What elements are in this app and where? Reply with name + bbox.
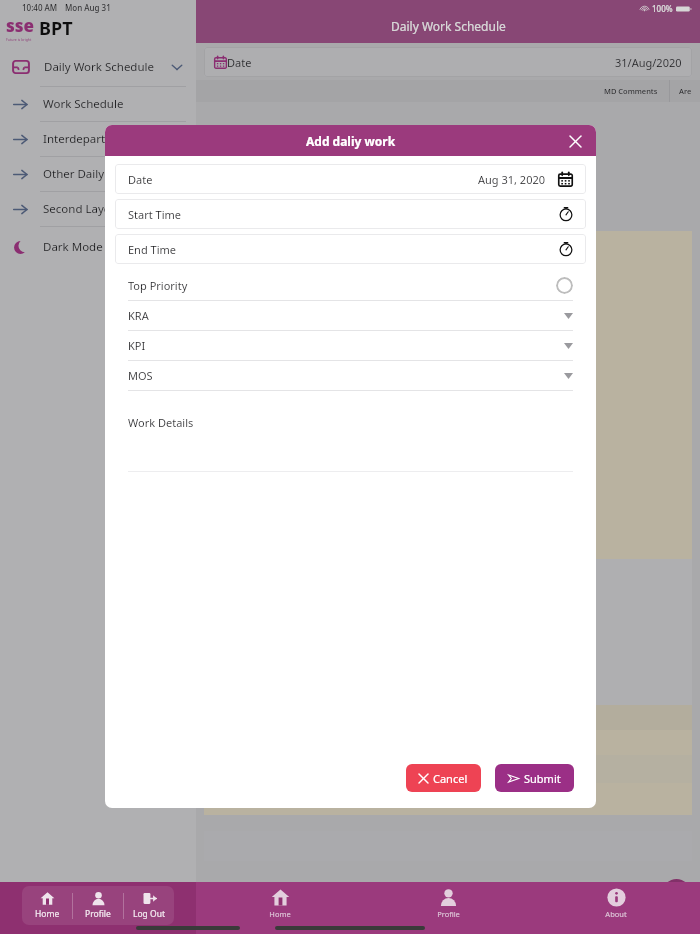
- staticText: Interdepartmental: [43, 131, 144, 147]
- button[interactable]: Log Out: [124, 886, 174, 925]
- staticText: Top Priority: [128, 278, 188, 293]
- button[interactable]: Cancel: [406, 764, 481, 792]
- staticText: End Time: [128, 242, 176, 257]
- button[interactable]: Second Layer: [0, 192, 196, 226]
- staticText: BPT: [39, 16, 73, 41]
- button[interactable]: Add: [663, 879, 690, 906]
- staticText: Are: [679, 86, 692, 96]
- staticText: About: [605, 909, 627, 919]
- staticText: KPI: [128, 338, 146, 353]
- staticText: Other Daily Work: [43, 166, 136, 182]
- button[interactable]: Dark Mode: [0, 227, 196, 267]
- staticText: KRA: [128, 308, 149, 323]
- staticText: Work Schedule: [43, 96, 124, 112]
- button[interactable]: Home: [22, 886, 72, 925]
- staticText: sse: [6, 14, 35, 37]
- button[interactable]: Top Priority: [128, 271, 573, 300]
- staticText: Daily Work Schedule: [391, 18, 506, 34]
- button[interactable]: Date: [204, 47, 692, 77]
- staticText: Second Layer: [43, 201, 116, 217]
- staticText: Future is bright: [6, 37, 32, 42]
- button[interactable]: Daily Work Schedule: [0, 48, 196, 86]
- button[interactable]: Start Time: [115, 199, 586, 229]
- button[interactable]: MOS: [128, 361, 573, 390]
- staticText: Submit: [524, 771, 561, 786]
- staticText: 10:40 AM: [22, 2, 58, 13]
- staticText: MD Comments: [604, 86, 658, 96]
- staticText: Home: [35, 908, 60, 920]
- button[interactable]: Other Daily Work: [0, 157, 196, 191]
- button[interactable]: KRA: [128, 301, 573, 330]
- staticText: Profile: [437, 909, 460, 919]
- staticText: Date: [227, 55, 252, 70]
- button[interactable]: Submit: [495, 764, 574, 792]
- staticText: 100%: [652, 3, 673, 14]
- button[interactable]: Profile: [364, 882, 532, 924]
- staticText: Start Time: [128, 207, 181, 222]
- staticText: Mon Aug 31: [65, 2, 111, 13]
- button[interactable]: Top priority toggle: [556, 277, 573, 294]
- button[interactable]: KPI: [128, 331, 573, 360]
- button[interactable]: Date: [115, 164, 586, 194]
- button[interactable]: End Time: [115, 234, 586, 264]
- staticText: Date: [128, 172, 153, 187]
- button[interactable]: Work Schedule: [0, 87, 196, 121]
- button[interactable]: Home: [196, 882, 364, 924]
- staticText: Cancel: [433, 771, 468, 786]
- staticText: Aug 31, 2020: [478, 172, 546, 187]
- staticText: 31/Aug/2020: [615, 55, 682, 70]
- staticText: MOS: [128, 368, 153, 383]
- staticText: Add daliy work: [306, 133, 396, 149]
- staticText: Home: [269, 909, 291, 919]
- button[interactable]: Profile: [73, 886, 123, 925]
- staticText: Daily Work Schedule: [44, 59, 154, 75]
- button[interactable]: Close: [564, 130, 586, 152]
- button[interactable]: About: [532, 882, 700, 924]
- staticText: Dark Mode: [43, 239, 103, 255]
- staticText: Log Out: [133, 908, 165, 920]
- staticText: Work Details: [128, 415, 194, 430]
- button[interactable]: Interdepartmental: [0, 122, 196, 156]
- staticText: Profile: [85, 908, 111, 920]
